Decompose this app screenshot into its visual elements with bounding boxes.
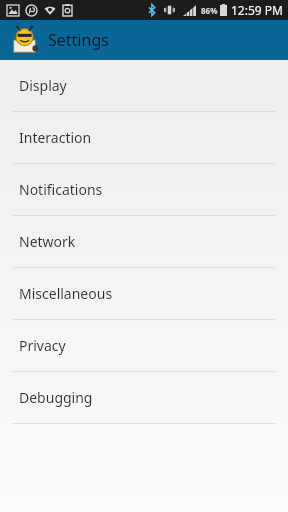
staticText: Network — [19, 232, 76, 251]
button[interactable]: Notifications — [0, 164, 288, 216]
button[interactable]: Network — [0, 216, 288, 268]
button[interactable]: Debugging — [0, 372, 288, 424]
staticText: 12:59 PM — [231, 2, 283, 18]
staticText: Debugging — [19, 388, 93, 407]
button[interactable]: Privacy — [0, 320, 288, 372]
staticText: Settings — [48, 29, 109, 51]
button[interactable]: Interaction — [0, 112, 288, 164]
staticText: Privacy — [19, 336, 66, 355]
staticText: Miscellaneous — [19, 284, 113, 303]
staticText: Notifications — [19, 180, 103, 199]
staticText: Display — [19, 76, 67, 95]
staticText: Interaction — [19, 128, 92, 147]
button[interactable]: Miscellaneous — [0, 268, 288, 320]
button[interactable]: Display — [0, 60, 288, 112]
staticText: 86% — [201, 5, 218, 16]
